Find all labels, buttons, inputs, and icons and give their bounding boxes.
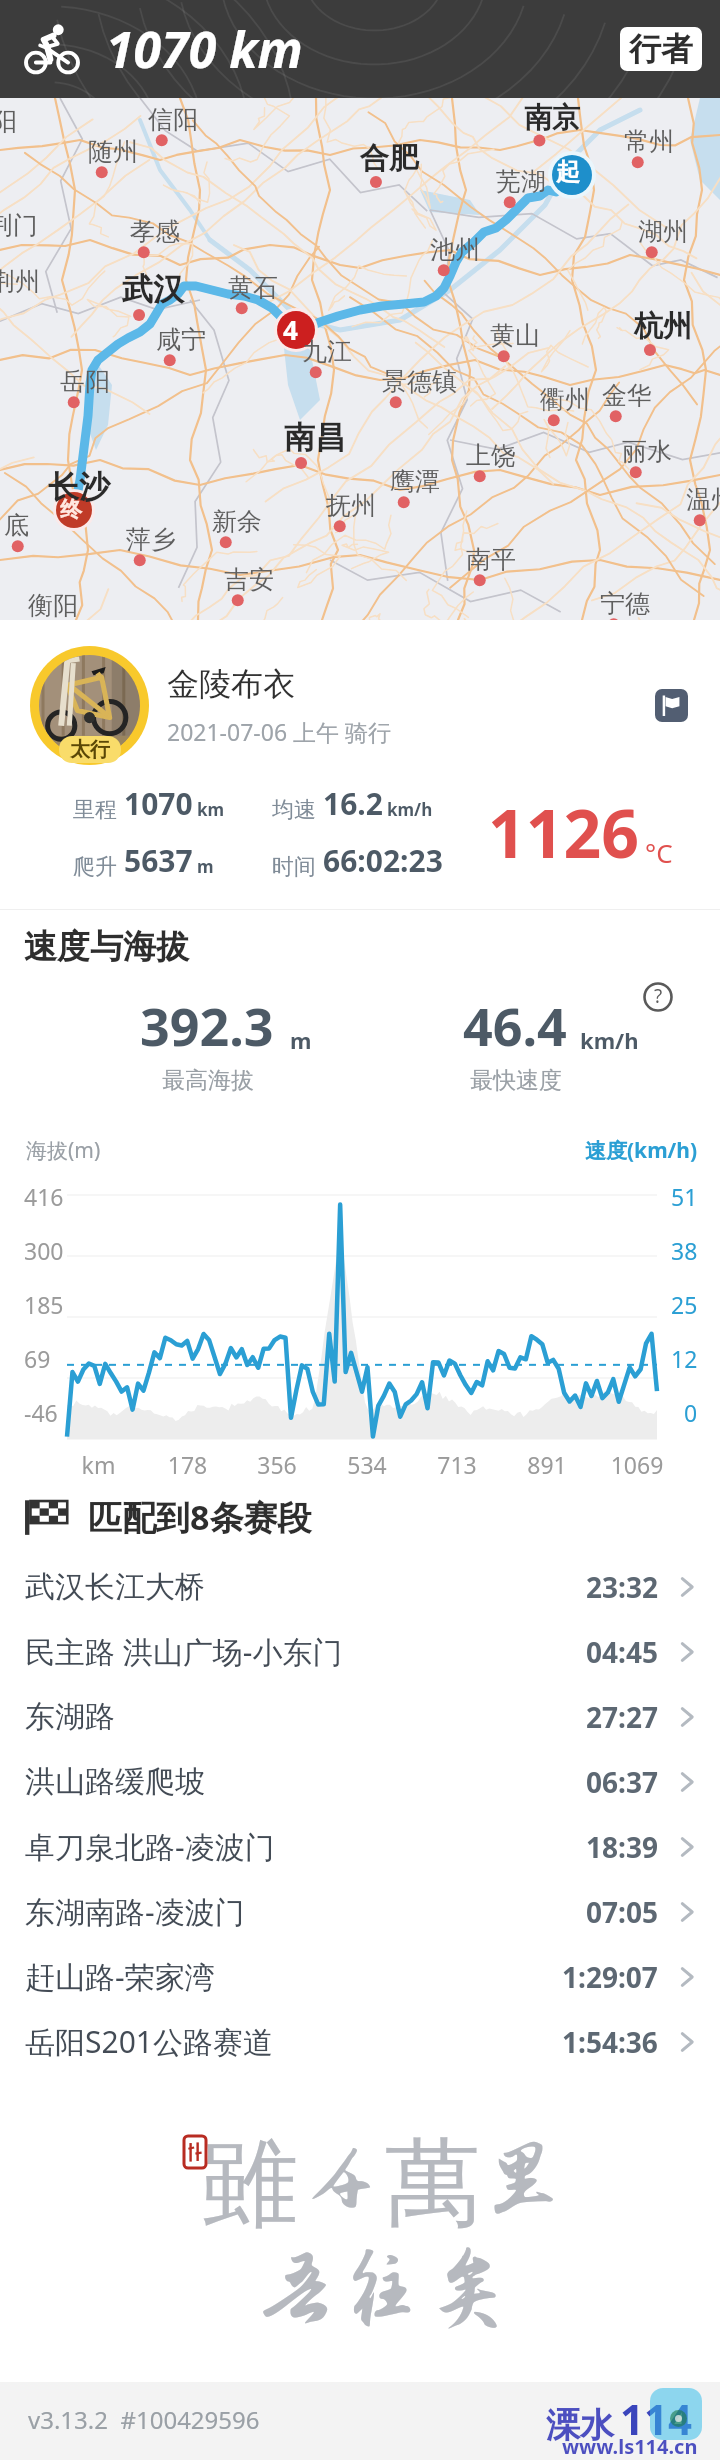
staticText: 12	[671, 1343, 698, 1371]
staticText: 衡阳	[28, 590, 78, 620]
staticText: 洪山路缓爬坡	[25, 1763, 205, 1801]
staticText: 民主路 洪山广场-小东门	[25, 1631, 343, 1672]
staticText: -46	[24, 1397, 58, 1425]
staticText: 南京	[524, 100, 580, 135]
staticText: 赶山路-荣家湾	[25, 1956, 215, 1997]
staticText: 南昌	[284, 418, 346, 457]
staticText: 匹配到8条赛段	[88, 1494, 312, 1540]
staticText: 713	[412, 1449, 502, 1480]
staticText: 速度与海拔	[24, 926, 189, 968]
staticText: m	[197, 855, 214, 878]
button[interactable]: 东湖路	[0, 1684, 720, 1749]
staticText: 黄石	[228, 272, 278, 303]
button[interactable]: 洪山路缓爬坡	[0, 1749, 720, 1814]
button[interactable]: 行者	[620, 27, 702, 71]
staticText: °C	[645, 835, 673, 870]
staticText: 随州	[88, 136, 138, 167]
staticText: 萍乡	[126, 524, 176, 555]
staticText: 行者	[629, 29, 693, 69]
staticText: 891	[502, 1449, 592, 1480]
staticText: 长沙	[48, 468, 110, 507]
staticText: 25	[671, 1289, 698, 1317]
button[interactable]: Help	[643, 982, 673, 1012]
staticText: 丽水	[622, 436, 672, 467]
staticText: 均速	[272, 796, 316, 824]
staticText: 阳	[0, 106, 17, 137]
staticText: www.ls114.cn	[562, 2433, 698, 2460]
staticText: 0	[684, 1397, 698, 1425]
button[interactable]: 岳阳S201公路赛道	[0, 2009, 720, 2074]
button[interactable]: Segment flag	[655, 689, 688, 722]
staticText: 景德镇	[382, 366, 457, 397]
button[interactable]: 卓刀泉北路-凌波门	[0, 1814, 720, 1879]
staticText: 69	[24, 1343, 51, 1371]
staticText: 66:02:23	[323, 840, 443, 881]
other: Cycling activity	[26, 23, 78, 75]
staticText: 湖州	[638, 216, 688, 247]
staticText: ?	[654, 983, 663, 1009]
staticText: 178	[143, 1449, 232, 1480]
staticText: 终	[60, 496, 82, 524]
staticText: 九江	[302, 336, 352, 367]
staticText: 鹰潭	[390, 466, 440, 497]
staticText: 2021-07-06 上午 骑行	[167, 716, 392, 747]
button[interactable]: 民主路 洪山广场-小东门	[0, 1619, 720, 1684]
staticText: 武汉长江大桥	[25, 1568, 205, 1606]
button[interactable]: 赶山路-荣家湾	[0, 1944, 720, 2009]
staticText: 1070	[124, 783, 193, 824]
staticText: 吉安	[224, 564, 274, 595]
staticText: 太行	[70, 737, 110, 762]
staticText: 新余	[212, 506, 262, 537]
staticText: 356	[232, 1449, 322, 1480]
staticText: 534	[322, 1449, 412, 1480]
staticText: 185	[24, 1289, 64, 1317]
staticText: m	[290, 1025, 312, 1055]
staticText: v3.13.2 #100429596	[28, 2403, 260, 2436]
staticText: 武汉	[122, 270, 184, 309]
staticText: 最高海拔	[162, 1066, 254, 1095]
staticText: 衢州	[540, 384, 590, 415]
staticText: 卓刀泉北路-凌波门	[25, 1826, 275, 1867]
staticText: 1:54:36	[562, 2023, 658, 2061]
staticText: 南平	[466, 544, 516, 575]
staticText: 咸宁	[156, 324, 206, 355]
staticText: 岳阳	[60, 366, 110, 397]
staticText: 38	[671, 1235, 698, 1263]
staticText: 宁德	[600, 588, 650, 619]
staticText: 爬升	[73, 853, 117, 881]
staticText: 起	[556, 157, 580, 187]
staticText: 392.3	[140, 990, 274, 1061]
staticText: 雖千萬里	[202, 2124, 567, 2245]
staticText: 4	[283, 312, 298, 347]
staticText: 416	[24, 1181, 64, 1209]
staticText: 里程	[73, 796, 117, 824]
staticText: 23:32	[586, 1568, 658, 1606]
button[interactable]: 武汉长江大桥	[0, 1554, 720, 1619]
staticText: 池州	[430, 234, 480, 265]
staticText: 时间	[272, 853, 316, 881]
staticText: 金陵布衣	[167, 664, 295, 704]
staticText: 114	[620, 2390, 693, 2447]
staticText: 06:37	[586, 1763, 658, 1801]
staticText: 荆州	[0, 266, 40, 297]
staticText: km	[197, 798, 225, 821]
button[interactable]: 东湖南路-凌波门	[0, 1879, 720, 1944]
staticText: 07:05	[586, 1893, 658, 1931]
staticText: 岳阳S201公路赛道	[25, 2021, 273, 2062]
staticText: 1126	[488, 787, 640, 877]
staticText: 东湖南路-凌波门	[25, 1891, 245, 1932]
staticText: 东湖路	[25, 1698, 115, 1736]
staticText: 300	[24, 1235, 64, 1263]
button[interactable]: Route map	[0, 98, 720, 620]
staticText: 04:45	[586, 1633, 658, 1671]
staticText: 黄山	[490, 320, 540, 351]
staticText: 海拔(m)	[26, 1136, 101, 1165]
staticText: 荆门	[0, 210, 38, 241]
staticText: 温州	[686, 484, 720, 515]
staticText: 最快速度	[470, 1066, 562, 1095]
staticText: 抚州	[326, 490, 376, 521]
staticText: 18:39	[586, 1828, 658, 1866]
staticText: 5637	[124, 840, 193, 881]
staticText: 金华	[602, 380, 652, 411]
staticText: 芜湖	[496, 166, 546, 197]
